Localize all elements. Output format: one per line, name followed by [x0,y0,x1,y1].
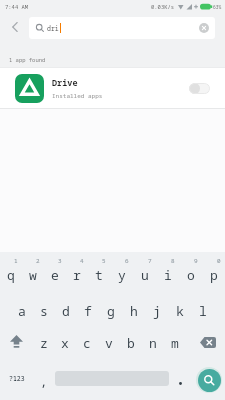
staticText: 7:44 AM [5,3,29,10]
button[interactable]: dri [29,17,215,39]
staticText: v [105,334,113,352]
staticText: z [40,334,48,352]
staticText: 6 [125,257,129,265]
button[interactable]: 8 [156,252,179,289]
staticText: 2 [36,257,40,265]
staticText: c [83,334,91,352]
button[interactable]: a [11,289,33,326]
staticText: j [153,302,161,320]
button[interactable] [192,363,225,400]
button[interactable]: f [77,289,99,326]
staticText: f [84,302,92,320]
staticText: p [210,266,218,284]
staticText: 8 [171,257,175,265]
button[interactable]: 1 [0,252,22,289]
button[interactable]: 4 [66,252,88,289]
staticText: 9 [194,257,198,265]
staticText: l [199,302,207,320]
button[interactable]: k [168,289,191,326]
staticText: 4 [80,257,84,265]
staticText: 3 [58,257,62,265]
staticText: s [40,302,48,320]
staticText: n [149,334,157,352]
staticText: y [118,266,126,284]
button[interactable] [0,13,29,41]
staticText: g [107,302,115,320]
staticText: Installed apps [52,92,103,100]
staticText: b [127,334,135,352]
staticText: 5 [102,257,106,265]
staticText: ?123 [9,374,25,383]
staticText: h [130,302,138,320]
button[interactable]: j [145,289,168,326]
staticText: dri [47,24,59,33]
staticText: x [61,334,69,352]
button[interactable]: b [120,326,142,363]
button[interactable]: 2 [22,252,44,289]
staticText: w [29,266,37,284]
button[interactable]: , [33,363,55,400]
staticText: u [141,266,149,284]
button[interactable]: 7 [133,252,156,289]
staticText: r [73,266,81,284]
button[interactable]: m [164,326,186,363]
staticText: , [40,373,48,389]
staticText: e [51,266,59,284]
staticText: 1 [14,257,18,265]
button[interactable] [0,326,33,363]
button[interactable]: c [76,326,98,363]
staticText: d [62,302,70,320]
button[interactable]: Drive [0,68,225,108]
staticText: o [187,266,195,284]
button[interactable]: v [98,326,120,363]
button[interactable] [169,363,192,400]
staticText: t [95,266,103,284]
button[interactable] [186,326,225,363]
staticText: 0.03K/s [151,3,175,10]
staticText: q [7,266,15,284]
staticText: k [176,302,184,320]
button[interactable]: 3 [44,252,66,289]
staticText: i [164,266,172,284]
button[interactable]: 6 [110,252,133,289]
button[interactable]: d [55,289,77,326]
staticText: 0 [217,257,221,265]
button[interactable] [189,83,210,94]
staticText: m [171,334,179,352]
button[interactable]: h [122,289,145,326]
button[interactable]: s [33,289,55,326]
button[interactable]: z [33,326,54,363]
button[interactable] [199,23,209,33]
button[interactable]: ?123 [0,363,33,400]
button[interactable]: l [191,289,214,326]
staticText: 1 app found [9,56,46,63]
button[interactable] [198,369,221,392]
button[interactable]: g [99,289,122,326]
staticText: 63% [213,4,222,10]
button[interactable]: 5 [88,252,110,289]
staticText: a [18,302,26,320]
button[interactable]: 0 [202,252,225,289]
button[interactable]: x [54,326,76,363]
staticText: Drive [52,77,78,89]
button[interactable]: n [142,326,164,363]
staticText: 7 [148,257,152,265]
button[interactable]: 9 [179,252,202,289]
